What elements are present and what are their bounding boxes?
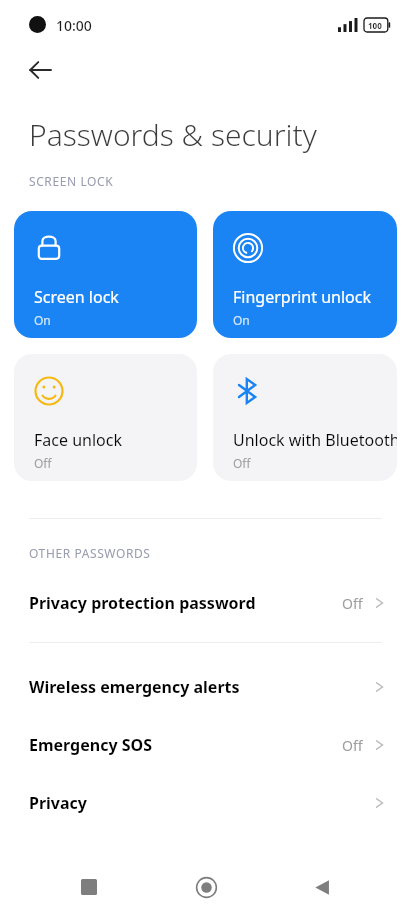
staticText: SCREEN LOCK [29, 173, 114, 189]
staticText: Unlock with Bluetooth [233, 429, 397, 451]
button[interactable]: Privacy [0, 781, 411, 825]
button[interactable]: Face unlock [14, 354, 197, 481]
staticText: OTHER PASSWORDS [29, 545, 151, 561]
button[interactable]: Recents [62, 860, 116, 914]
staticText: Screen lock [34, 286, 119, 308]
staticText: Off [233, 455, 251, 471]
staticText: On [233, 312, 250, 328]
button[interactable]: Back [295, 860, 349, 914]
staticText: Emergency SOS [29, 734, 153, 756]
staticText: Off [342, 594, 363, 613]
button[interactable]: Wireless emergency alerts [0, 665, 411, 709]
staticText: 10:00 [56, 16, 92, 35]
button[interactable]: Screen lock [14, 211, 197, 338]
staticText: On [34, 312, 51, 328]
button[interactable]: Home [179, 860, 233, 914]
button[interactable]: Unlock with Bluetooth [213, 354, 397, 481]
staticText: 100 [368, 20, 382, 31]
staticText: Off [342, 736, 363, 755]
button[interactable]: Fingerprint unlock [213, 211, 397, 338]
staticText: Face unlock [34, 429, 122, 451]
staticText: Privacy [29, 792, 87, 814]
button[interactable]: Privacy protection password [0, 581, 411, 625]
button[interactable]: Back [18, 48, 62, 92]
staticText: Off [34, 455, 52, 471]
staticText: Privacy protection password [29, 592, 256, 614]
button[interactable]: Emergency SOS [0, 723, 411, 767]
staticText: Wireless emergency alerts [29, 676, 240, 698]
staticText: Fingerprint unlock [233, 286, 372, 308]
staticText: Passwords & security [29, 114, 317, 155]
